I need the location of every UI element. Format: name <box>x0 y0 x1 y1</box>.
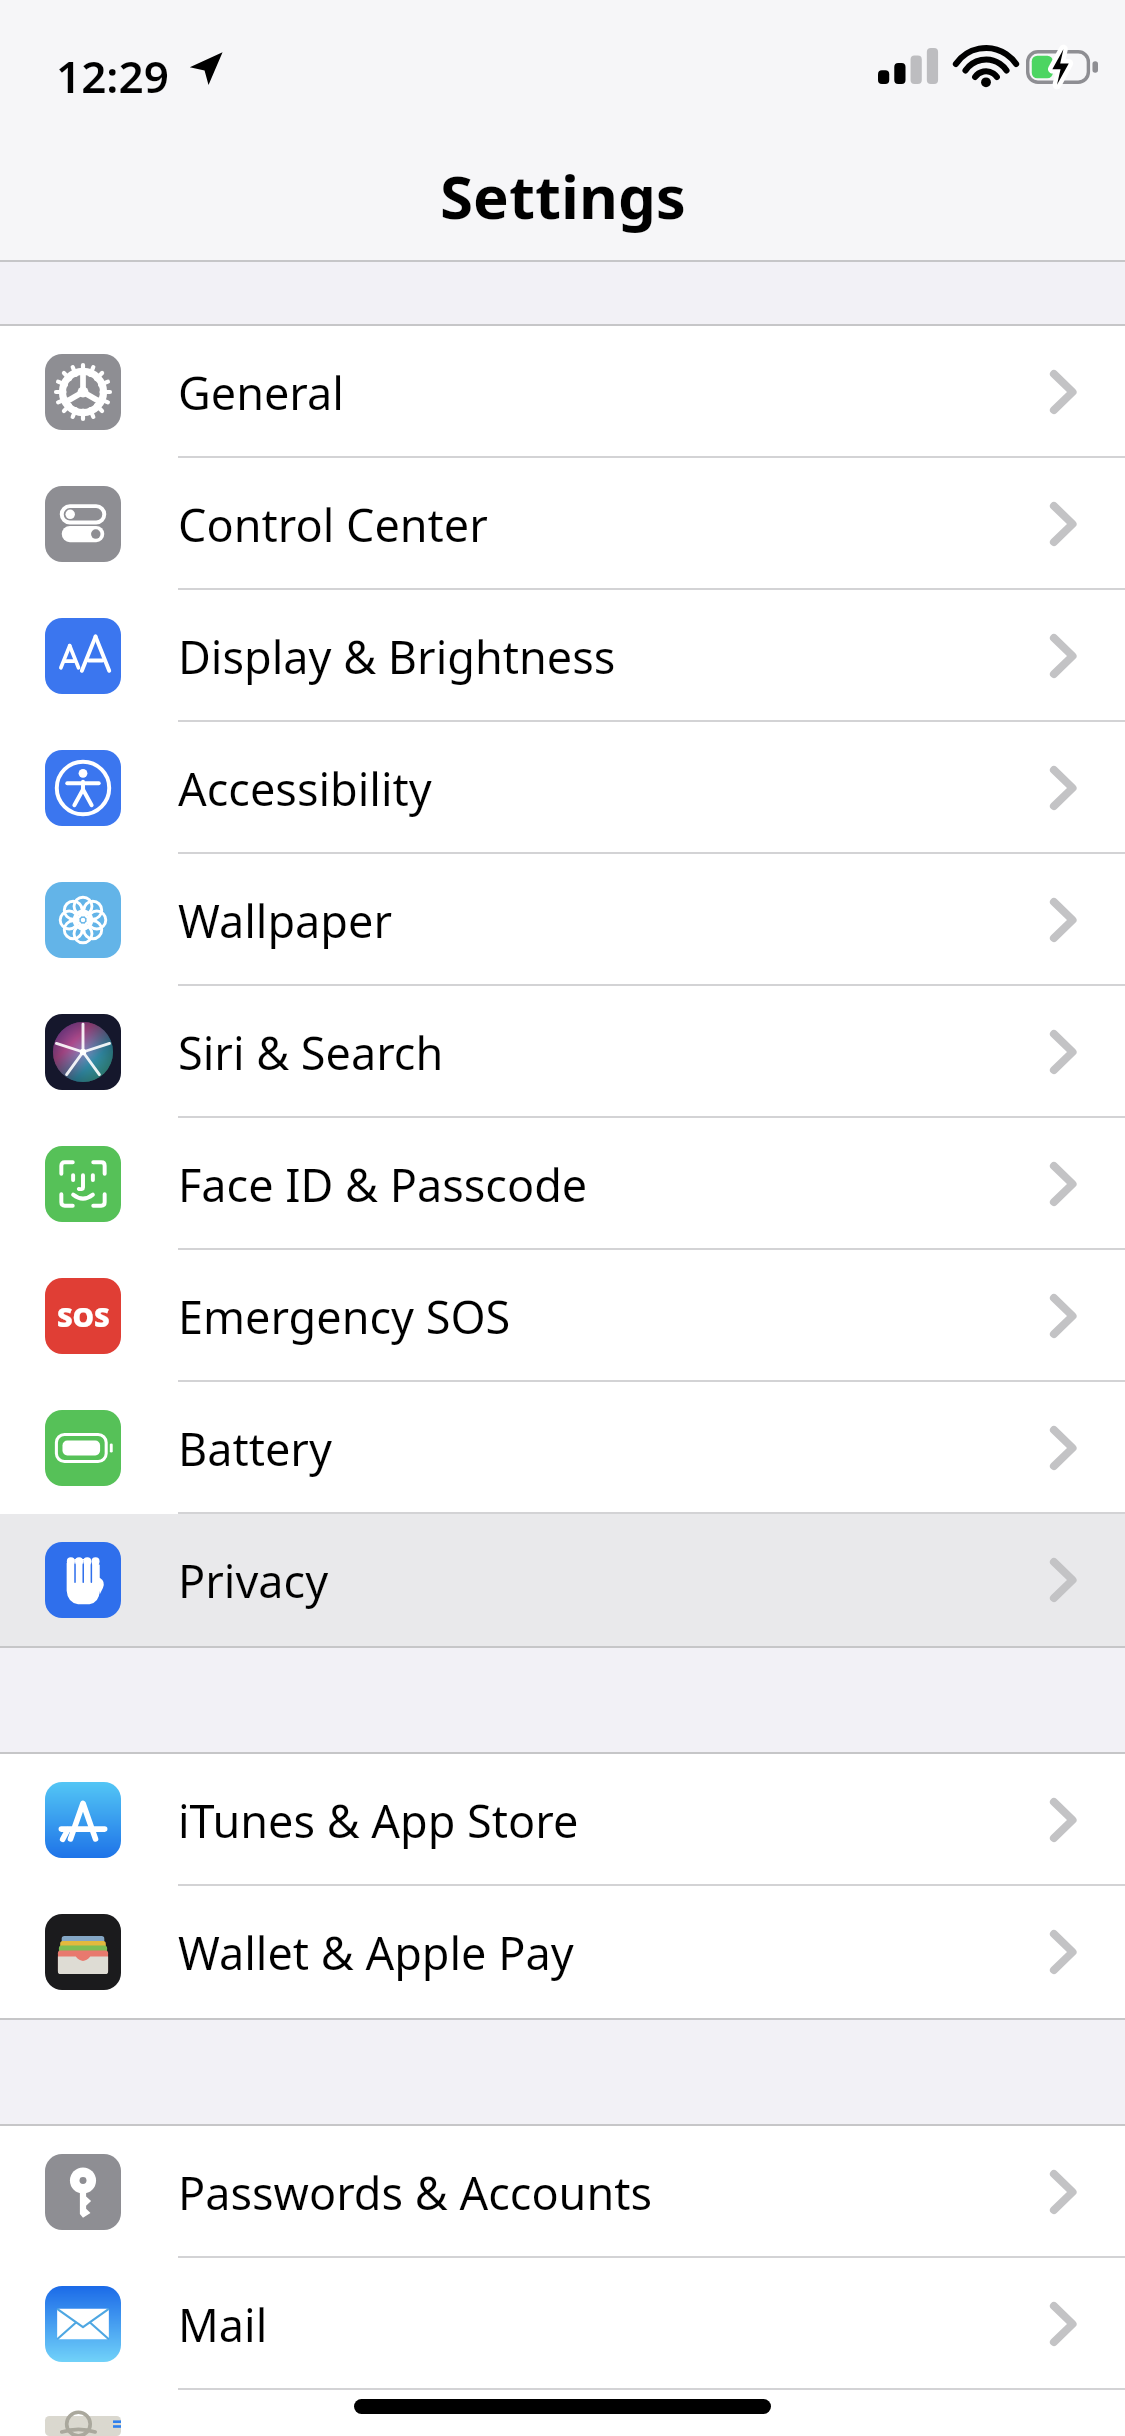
staticText: Settings <box>440 155 686 237</box>
staticText: General <box>178 362 344 423</box>
staticText: Accessibility <box>178 758 432 819</box>
button[interactable]: Control Center <box>0 458 1125 590</box>
button[interactable]: iTunes & App Store <box>0 1754 1125 1886</box>
button[interactable]: Wallet & Apple Pay <box>0 1886 1125 2018</box>
button[interactable]: General <box>0 326 1125 458</box>
button[interactable]: Mail <box>0 2258 1125 2390</box>
staticText: Control Center <box>178 494 488 555</box>
staticText: Wallet & Apple Pay <box>178 1922 574 1983</box>
staticText: Siri & Search <box>178 1022 444 1083</box>
button[interactable]: SOS <box>0 1250 1125 1382</box>
staticText: Emergency SOS <box>178 1286 511 1347</box>
button[interactable]: Contacts <box>0 2390 1125 2436</box>
button[interactable]: Accessibility <box>0 722 1125 854</box>
staticText: SOS <box>57 1298 110 1335</box>
button[interactable]: Wallpaper <box>0 854 1125 986</box>
staticText: 12:29 <box>56 46 169 106</box>
staticText: Face ID & Passcode <box>178 1154 588 1215</box>
staticText: Privacy <box>178 1550 329 1611</box>
button[interactable]: Siri & Search <box>0 986 1125 1118</box>
staticText: Passwords & Accounts <box>178 2162 653 2223</box>
staticText: iTunes & App Store <box>178 1790 579 1851</box>
staticText: Battery <box>178 1418 332 1479</box>
staticText: Display & Brightness <box>178 626 616 687</box>
button[interactable]: Face ID & Passcode <box>0 1118 1125 1250</box>
staticText: Wallpaper <box>178 890 392 951</box>
staticText: Mail <box>178 2294 268 2355</box>
button[interactable]: Battery <box>0 1382 1125 1514</box>
button[interactable]: Passwords & Accounts <box>0 2126 1125 2258</box>
button[interactable]: Privacy <box>0 1514 1125 1646</box>
button[interactable]: Display & Brightness <box>0 590 1125 722</box>
